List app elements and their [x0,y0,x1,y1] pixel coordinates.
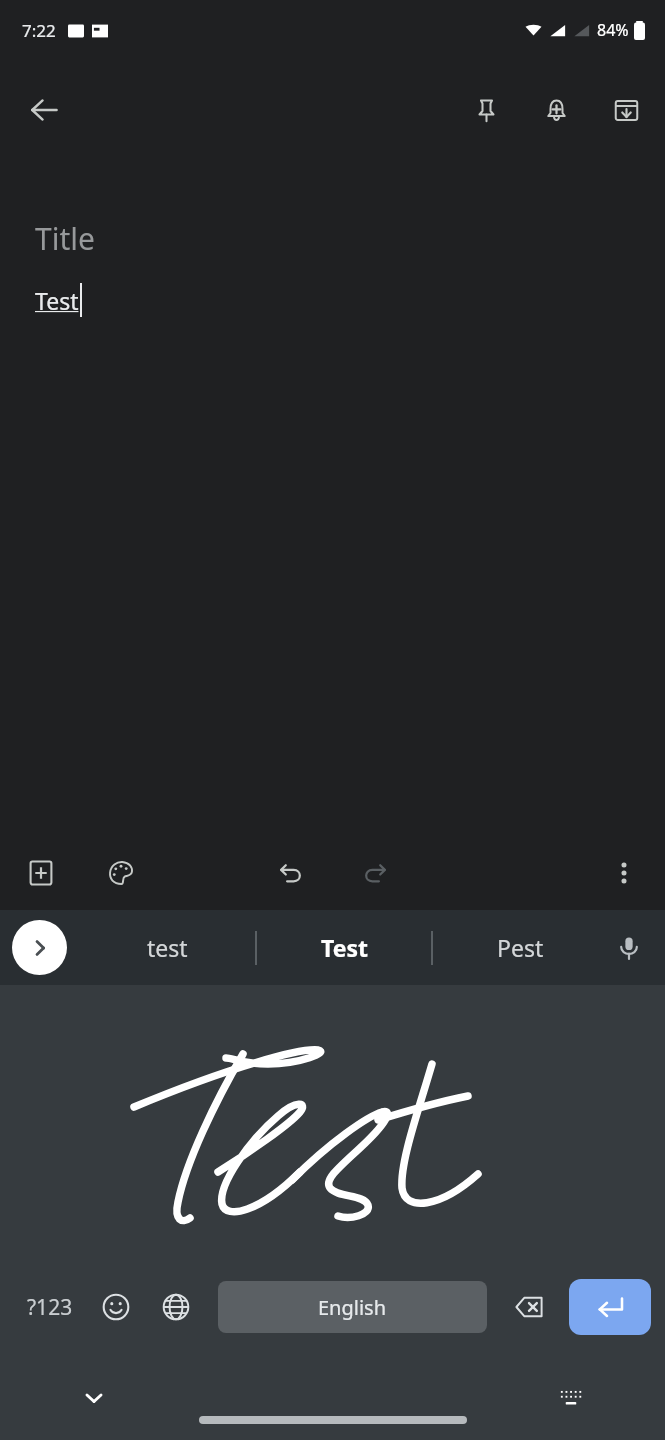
button[interactable]: Back [8,74,80,146]
staticText: English [318,1294,387,1321]
staticText: Test [321,932,368,963]
button[interactable]: English [218,1281,487,1333]
button[interactable]: Emoji [86,1277,146,1337]
staticText: test [147,932,188,963]
staticText: ?123 [27,1293,73,1322]
button[interactable]: Pin [457,81,515,139]
button[interactable]: Backspace [499,1277,559,1337]
button[interactable]: Add [14,846,68,900]
staticText: 7:22 [22,19,56,42]
button[interactable]: Hide keyboard [70,1374,118,1422]
button[interactable]: More options [599,848,649,898]
button[interactable]: Voice input [601,920,657,976]
button[interactable]: Enter [569,1279,651,1335]
staticText: Title [35,218,95,259]
staticText: 84% [597,19,629,41]
button[interactable]: Redo [348,846,402,900]
button[interactable]: Expand toolbar [12,920,67,975]
button[interactable]: Remind me [527,81,585,139]
staticText: Test [35,285,79,316]
staticText: Pest [497,932,544,963]
button[interactable]: Undo [264,846,318,900]
button[interactable]: Switch keyboard [547,1374,595,1422]
button[interactable]: Test [257,910,431,985]
button[interactable]: test [80,910,255,985]
button[interactable]: Pest [433,910,607,985]
button[interactable]: ?123 [14,1268,86,1346]
button[interactable]: Colour [94,846,148,900]
button[interactable]: Change language [146,1277,206,1337]
button[interactable]: Archive [597,81,655,139]
